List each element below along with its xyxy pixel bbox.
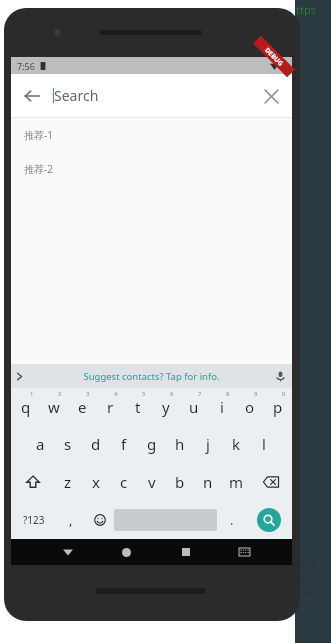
staticText: ?123	[23, 513, 45, 527]
button[interactable]: z	[54, 463, 82, 501]
staticText: 1	[30, 390, 34, 398]
button[interactable]: ,	[56, 501, 85, 539]
staticText: n	[203, 472, 213, 492]
staticText: s	[64, 434, 72, 454]
button[interactable]: Home	[97, 539, 156, 565]
button[interactable]: v	[138, 463, 166, 501]
staticText: k	[232, 434, 241, 454]
staticText: 6	[170, 390, 174, 398]
button[interactable]: k	[222, 425, 250, 463]
button[interactable]: 4	[96, 388, 124, 425]
staticText: b	[175, 472, 185, 492]
button[interactable]: Backspace	[250, 463, 292, 501]
button[interactable]: .	[217, 501, 246, 539]
staticText: 推荐-1	[24, 128, 53, 142]
button[interactable]: Back	[11, 75, 53, 117]
staticText: f	[121, 434, 127, 454]
staticText: w	[48, 397, 60, 417]
button[interactable]: c	[110, 463, 138, 501]
staticText: o	[245, 397, 255, 417]
button[interactable]: n	[194, 463, 222, 501]
button[interactable]: Voice input	[268, 364, 292, 388]
button[interactable]: m	[222, 463, 250, 501]
staticText: l	[262, 434, 266, 454]
staticText: x	[92, 472, 100, 492]
button[interactable]: Clear	[250, 75, 292, 117]
button[interactable]: Expand suggestions	[11, 364, 27, 388]
button[interactable]: a	[26, 425, 54, 463]
staticText: 4	[114, 390, 118, 398]
button[interactable]: 2	[40, 388, 68, 425]
button[interactable]: j	[194, 425, 222, 463]
staticText: 5	[142, 390, 146, 398]
staticText: ,	[69, 511, 73, 529]
button[interactable]: b	[166, 463, 194, 501]
staticText: 8	[226, 390, 230, 398]
staticText: .	[230, 511, 234, 529]
button[interactable]: 5	[124, 388, 152, 425]
staticText: 推荐-2	[24, 162, 53, 176]
staticText: y	[162, 397, 170, 417]
button[interactable]: x	[82, 463, 110, 501]
button[interactable]: d	[82, 425, 110, 463]
button[interactable]: 9	[236, 388, 264, 425]
staticText: 7:56	[17, 60, 35, 72]
staticText: DEBUG	[263, 45, 286, 68]
button[interactable]: 7	[180, 388, 208, 425]
staticText: t	[135, 397, 141, 417]
staticText: 个人 es react	[300, 560, 322, 598]
staticText: i	[220, 397, 224, 417]
staticText: a	[36, 434, 45, 454]
staticText: m	[229, 472, 244, 492]
button[interactable]: 6	[152, 388, 180, 425]
button[interactable]: Suggest contacts? Tap for info.	[83, 370, 220, 383]
button[interactable]: 推荐-2	[11, 152, 292, 186]
staticText: r	[107, 397, 114, 417]
staticText: 9	[254, 390, 258, 398]
button[interactable]: g	[138, 425, 166, 463]
button[interactable]: h	[166, 425, 194, 463]
button[interactable]: l	[250, 425, 278, 463]
button[interactable]: 8	[208, 388, 236, 425]
button[interactable]: Hide keyboard	[39, 539, 97, 565]
button[interactable]: ?123	[11, 501, 56, 539]
staticText: q	[21, 397, 31, 417]
staticText: Search	[54, 86, 99, 105]
staticText: 2	[58, 390, 62, 398]
staticText: h	[175, 434, 185, 454]
button[interactable]: f	[110, 425, 138, 463]
button[interactable]: Recents	[156, 539, 215, 565]
staticText: c	[120, 472, 128, 492]
staticText: p	[273, 397, 283, 417]
button[interactable]: 推荐-1	[11, 118, 292, 152]
button[interactable]: Switch keyboard	[215, 539, 274, 565]
staticText: e	[78, 397, 87, 417]
staticText: 7	[198, 390, 202, 398]
staticText: d	[91, 434, 101, 454]
staticText: ttps	[296, 2, 316, 17]
staticText: g	[147, 434, 157, 454]
staticText: j	[206, 434, 210, 454]
staticText: u	[189, 397, 199, 417]
button[interactable]: 3	[68, 388, 96, 425]
button[interactable]: 1	[11, 388, 40, 425]
staticText: v	[148, 472, 156, 492]
button[interactable]: s	[54, 425, 82, 463]
button[interactable]: Search	[257, 508, 281, 532]
button[interactable]: 0	[264, 388, 292, 425]
button[interactable]: Shift	[11, 463, 54, 501]
staticText: 0	[282, 390, 286, 398]
button[interactable]: Emoji	[85, 501, 114, 539]
staticText: z	[64, 472, 72, 492]
staticText: 3	[86, 390, 90, 398]
